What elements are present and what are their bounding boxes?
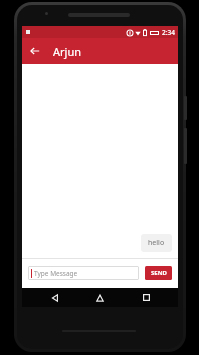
- button[interactable]: Type Message: [28, 266, 139, 280]
- button[interactable]: SEND: [145, 266, 172, 280]
- staticText: Type Message: [34, 269, 78, 278]
- button[interactable]: Home: [87, 288, 113, 307]
- staticText: 2:34: [162, 28, 175, 37]
- button[interactable]: Recent apps: [133, 288, 159, 307]
- button[interactable]: hello: [141, 234, 172, 252]
- button[interactable]: Back: [25, 41, 45, 61]
- button[interactable]: Back: [42, 288, 68, 307]
- staticText: Arjun: [53, 44, 82, 59]
- staticText: SEND: [151, 269, 167, 277]
- staticText: hello: [148, 238, 165, 248]
